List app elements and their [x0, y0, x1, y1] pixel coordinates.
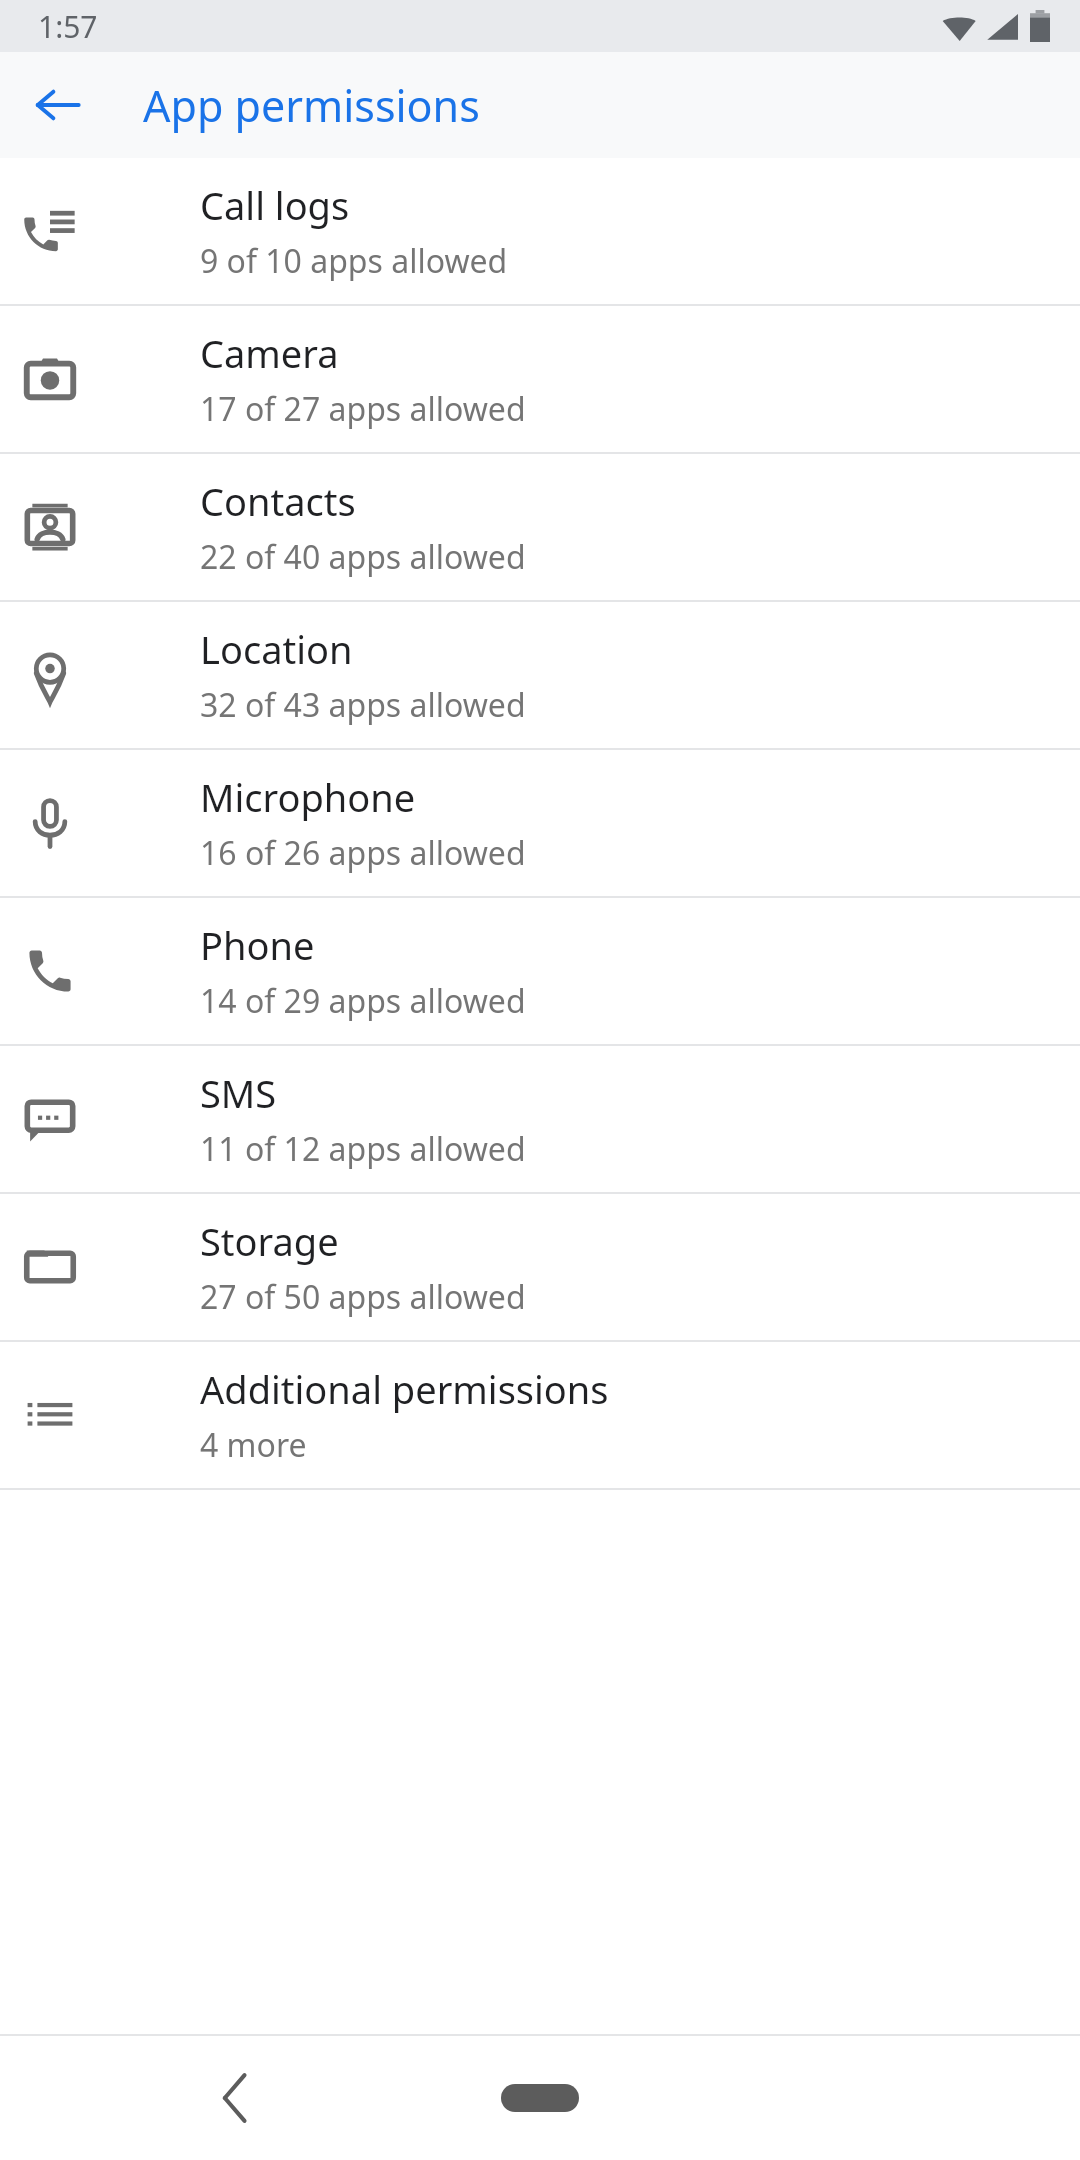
button[interactable]: Call logs — [0, 158, 1080, 304]
staticText: Call logs — [200, 179, 350, 231]
staticText: SMS — [200, 1067, 277, 1119]
staticText: 1:57 — [38, 6, 98, 47]
button[interactable]: Contacts — [0, 454, 1080, 600]
staticText: App permissions — [143, 76, 480, 135]
staticText: 9 of 10 apps allowed — [200, 239, 508, 283]
staticText: 11 of 12 apps allowed — [200, 1127, 526, 1171]
button[interactable]: Additional permissions — [0, 1342, 1080, 1488]
button[interactable]: Back — [18, 65, 98, 145]
staticText: 22 of 40 apps allowed — [200, 535, 526, 579]
staticText: 4 more — [200, 1423, 307, 1467]
staticText: Camera — [200, 327, 339, 379]
button[interactable]: Back — [180, 2043, 290, 2153]
staticText: 14 of 29 apps allowed — [200, 979, 526, 1023]
button[interactable]: SMS — [0, 1046, 1080, 1192]
button[interactable]: Phone — [0, 898, 1080, 1044]
button[interactable]: Microphone — [0, 750, 1080, 896]
button[interactable]: Camera — [0, 306, 1080, 452]
staticText: Contacts — [200, 475, 356, 527]
staticText: 17 of 27 apps allowed — [200, 387, 526, 431]
staticText: Storage — [200, 1215, 339, 1267]
button[interactable]: Storage — [0, 1194, 1080, 1340]
staticText: 16 of 26 apps allowed — [200, 831, 526, 875]
staticText: 27 of 50 apps allowed — [200, 1275, 526, 1319]
staticText: Additional permissions — [200, 1363, 609, 1415]
button[interactable]: Location — [0, 602, 1080, 748]
staticText: 32 of 43 apps allowed — [200, 683, 526, 727]
staticText: Microphone — [200, 771, 416, 823]
staticText: Phone — [200, 919, 315, 971]
staticText: Location — [200, 623, 353, 675]
button[interactable]: Home — [465, 2053, 615, 2143]
